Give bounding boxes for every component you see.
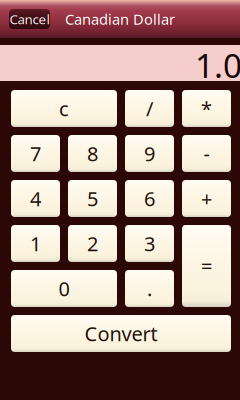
button[interactable]: Equals: [182, 225, 231, 307]
button[interactable]: 8: [68, 135, 117, 172]
staticText: Canadian Dollar: [65, 9, 175, 29]
staticText: 5: [87, 185, 98, 212]
staticText: +: [201, 185, 212, 212]
button[interactable]: 6: [125, 180, 174, 217]
button[interactable]: 4: [11, 180, 60, 217]
staticText: -: [203, 140, 209, 167]
staticText: 6: [144, 185, 155, 212]
button[interactable]: 3: [125, 225, 174, 262]
button[interactable]: Convert: [11, 315, 231, 352]
button[interactable]: Decimal point: [125, 270, 174, 307]
staticText: .: [147, 275, 152, 302]
staticText: c: [59, 95, 69, 122]
staticText: 1: [30, 230, 41, 257]
button[interactable]: Cancel: [9, 9, 50, 29]
button[interactable]: Multiply: [182, 90, 231, 127]
staticText: 7: [30, 140, 41, 167]
button[interactable]: Plus: [182, 180, 231, 217]
button[interactable]: Clear: [11, 90, 117, 127]
button[interactable]: 9: [125, 135, 174, 172]
button[interactable]: Divide: [125, 90, 174, 127]
button[interactable]: 1: [11, 225, 60, 262]
staticText: 0: [58, 275, 69, 302]
staticText: 3: [144, 230, 155, 257]
button[interactable]: 0: [11, 270, 117, 307]
staticText: 1.0: [195, 43, 240, 87]
button[interactable]: 7: [11, 135, 60, 172]
staticText: 8: [87, 140, 98, 167]
staticText: /: [146, 95, 153, 122]
staticText: 4: [30, 185, 41, 212]
staticText: 2: [87, 230, 98, 257]
staticText: *: [201, 95, 212, 122]
staticText: Cancel: [9, 10, 49, 28]
staticText: 9: [144, 140, 155, 167]
button[interactable]: 2: [68, 225, 117, 262]
staticText: =: [201, 253, 212, 279]
staticText: Convert: [84, 320, 157, 347]
button[interactable]: 5: [68, 180, 117, 217]
button[interactable]: Minus: [182, 135, 231, 172]
